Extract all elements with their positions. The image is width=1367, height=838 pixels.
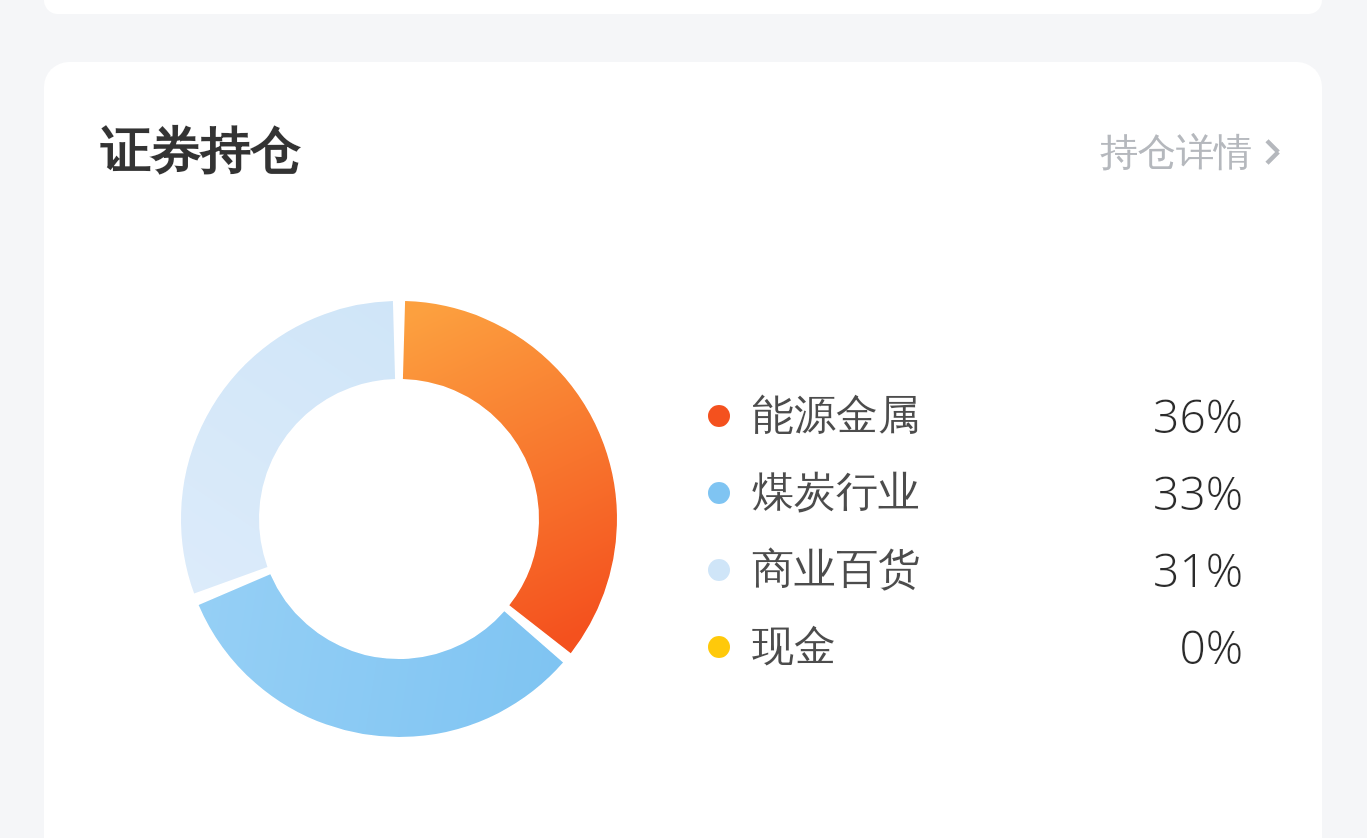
staticText: 证券持仓 [100,120,300,183]
button[interactable]: 煤炭行业 [708,454,1243,531]
button[interactable]: 能源金属 [708,377,1243,454]
button[interactable]: 持仓详情 [1094,122,1288,182]
staticText: 商业百货 [752,543,920,596]
staticText: 0% [1179,615,1243,678]
staticText: 33% [1153,461,1243,524]
staticText: 36% [1153,384,1243,447]
other: Holdings detail [1262,135,1282,169]
staticText: 持仓详情 [1100,128,1252,176]
button[interactable]: Holdings allocation chart [137,257,661,781]
button[interactable]: 商业百货 [708,531,1243,608]
staticText: 31% [1153,538,1243,601]
staticText: 煤炭行业 [752,466,920,519]
staticText: 现金 [752,620,836,673]
button[interactable]: 现金 [708,608,1243,685]
staticText: 能源金属 [752,389,920,442]
